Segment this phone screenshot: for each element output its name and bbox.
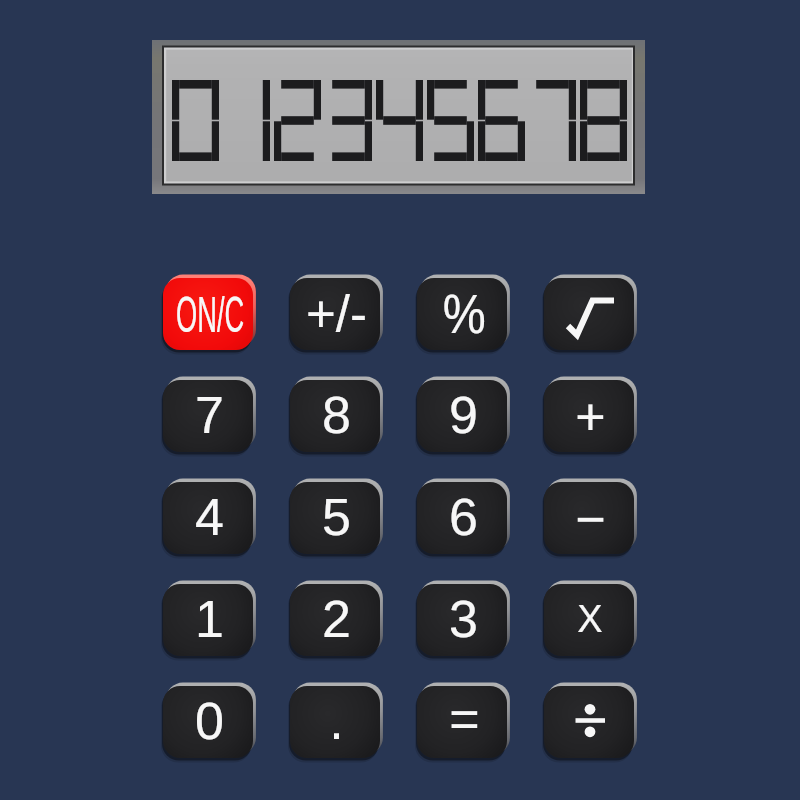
staticText: +/- — [306, 286, 367, 343]
staticText: 7 — [195, 386, 224, 444]
staticText: 0 — [195, 692, 224, 750]
button[interactable]: 5 — [290, 482, 380, 554]
button[interactable]: + — [544, 380, 634, 452]
button[interactable]: 8 — [290, 380, 380, 452]
button[interactable]: . — [290, 686, 380, 758]
staticText: 3 — [449, 590, 478, 648]
staticText: 9 — [449, 386, 478, 444]
staticText: 5 — [322, 488, 351, 546]
button[interactable]: = — [417, 686, 507, 758]
button[interactable]: 2 — [290, 584, 380, 656]
button[interactable]: 6 — [417, 482, 507, 554]
button[interactable]: X — [544, 584, 634, 656]
staticText: 4 — [195, 488, 224, 546]
button[interactable]: 0 — [163, 686, 253, 758]
staticText: 8 — [322, 386, 351, 444]
button[interactable]: Divide — [544, 686, 634, 758]
button[interactable]: 1 — [163, 584, 253, 656]
button[interactable]: 3 — [417, 584, 507, 656]
button[interactable]: ON/C — [163, 278, 253, 350]
staticText: % — [443, 283, 486, 344]
staticText: 6 — [449, 488, 478, 546]
staticText: = — [449, 690, 480, 748]
button[interactable]: Square root — [544, 278, 634, 350]
staticText: − — [575, 490, 606, 548]
button[interactable]: 4 — [163, 482, 253, 554]
staticText: 1 — [195, 590, 224, 648]
button[interactable]: +/- — [290, 278, 380, 350]
button[interactable]: 9 — [417, 380, 507, 452]
button[interactable]: − — [544, 482, 634, 554]
staticText: + — [575, 388, 606, 446]
button[interactable]: 7 — [163, 380, 253, 452]
staticText: 2 — [322, 590, 351, 648]
button[interactable]: % — [417, 278, 507, 350]
staticText: ON/C — [176, 287, 244, 343]
staticText: X — [577, 598, 603, 640]
staticText: . — [329, 692, 344, 750]
